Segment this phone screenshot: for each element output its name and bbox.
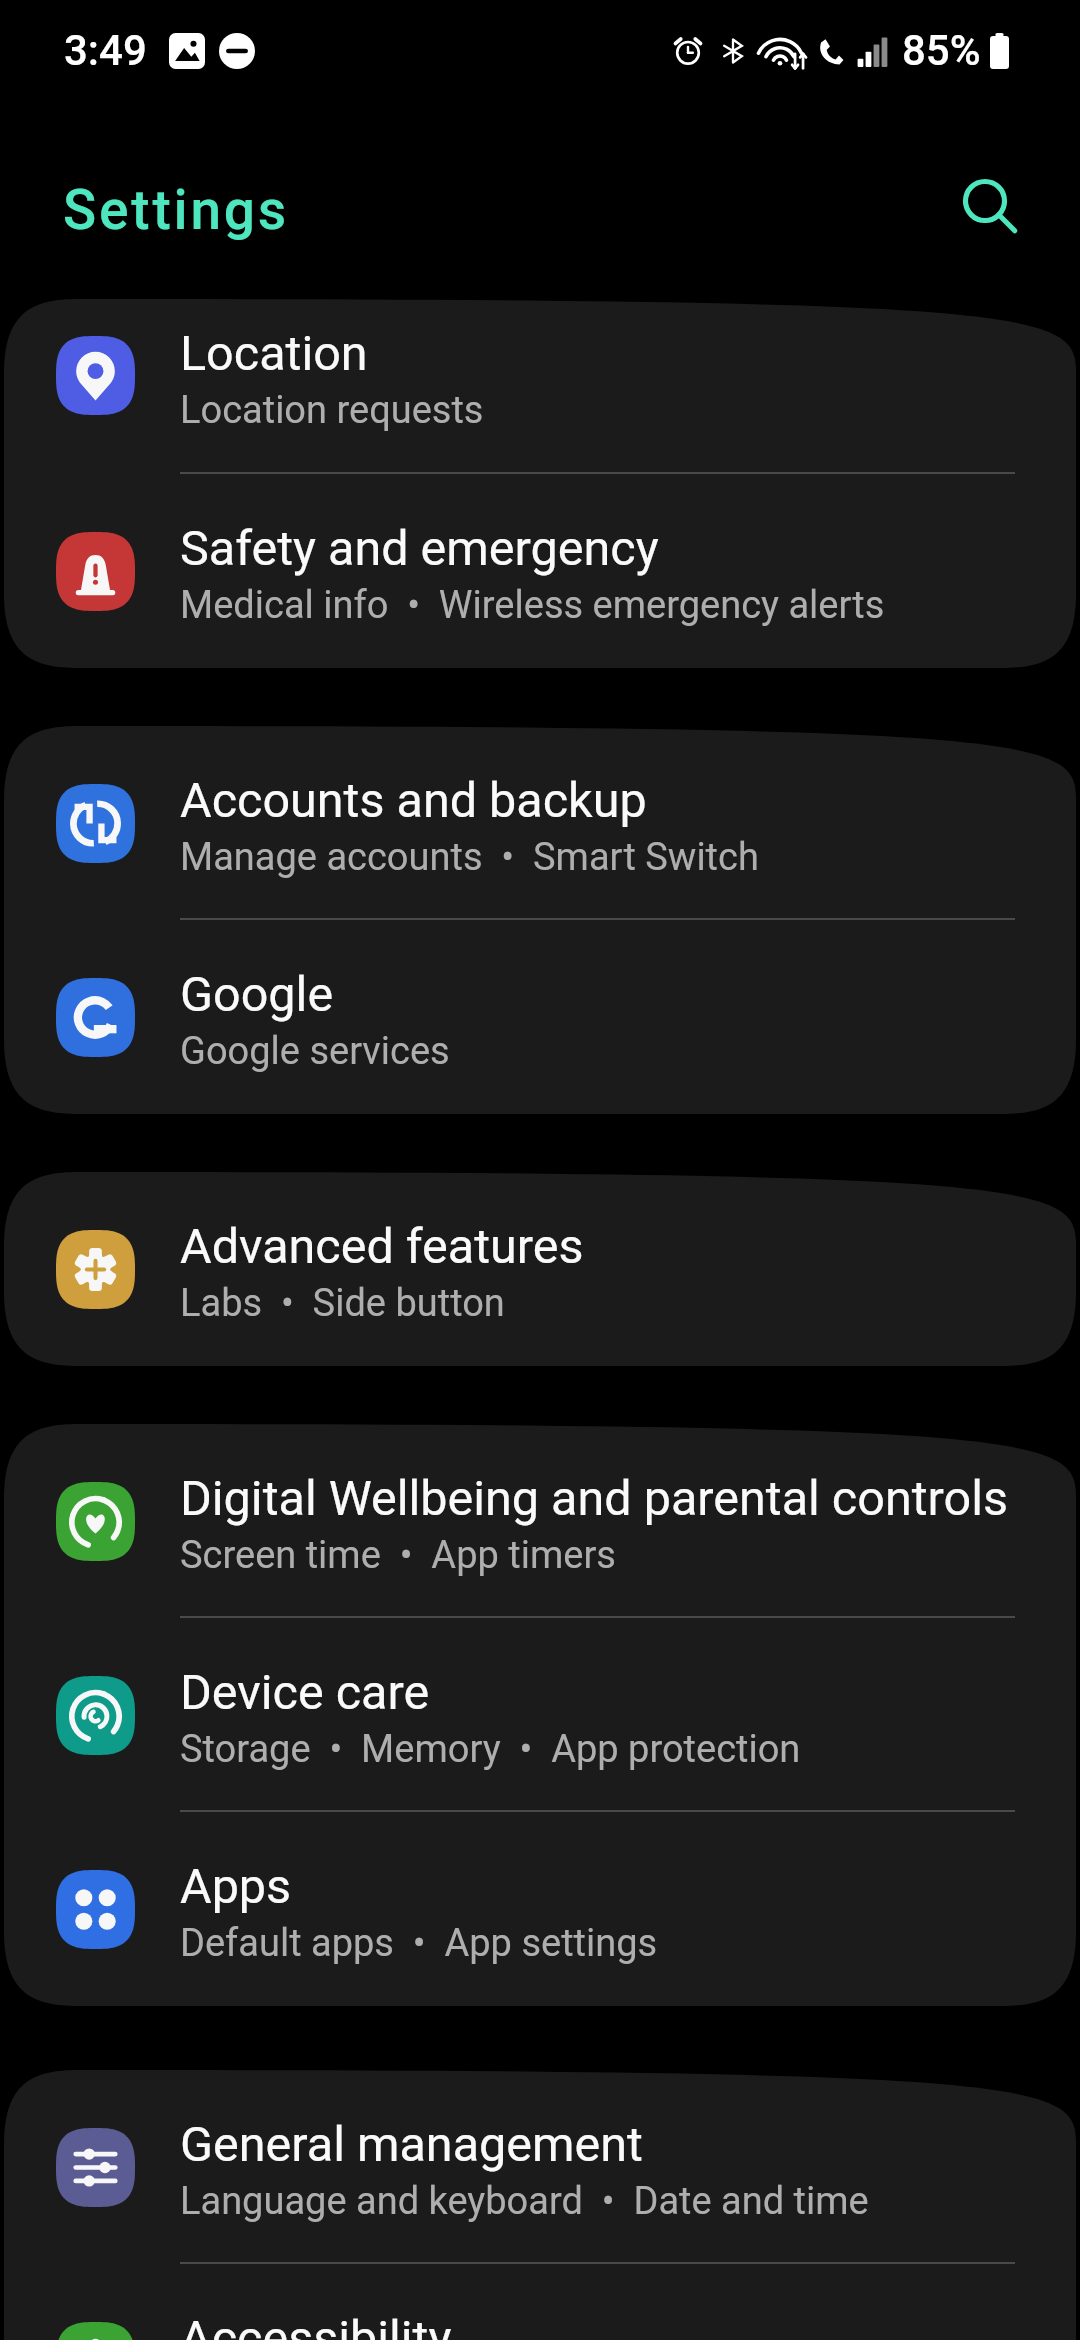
staticText: Digital Wellbeing and parental controls	[180, 1470, 1008, 1527]
button[interactable]: Digital Wellbeing and parental controls	[4, 1424, 1076, 1618]
staticText: 3:49	[64, 26, 147, 75]
button[interactable]: Safety and emergency	[4, 474, 1076, 668]
staticText: Device care	[180, 1664, 430, 1721]
staticText: Screen time • App timers	[180, 1533, 616, 1578]
staticText: Google services	[180, 1029, 450, 1074]
button[interactable]: Accessibility	[4, 2264, 1076, 2340]
staticText: Labs • Side button	[180, 1281, 505, 1326]
staticText: Default apps • App settings	[180, 1921, 658, 1966]
staticText: General management	[180, 2116, 643, 2173]
staticText: Safety and emergency	[180, 520, 659, 577]
staticText: Medical info • Wireless emergency alerts	[180, 583, 885, 628]
button[interactable]: Google	[4, 920, 1076, 1114]
staticText: 85%	[902, 26, 981, 75]
staticText: Location requests	[180, 388, 484, 433]
button[interactable]: General management	[4, 2070, 1076, 2264]
button[interactable]: Advanced features	[4, 1172, 1076, 1366]
button[interactable]: Apps	[4, 1812, 1076, 2006]
button[interactable]: Search	[940, 157, 1034, 251]
staticText: Google	[180, 966, 334, 1023]
staticText: Accounts and backup	[180, 772, 647, 829]
staticText: Language and keyboard • Date and time	[180, 2179, 869, 2224]
staticText: Location	[180, 325, 368, 382]
staticText: Advanced features	[180, 1218, 584, 1275]
staticText: Apps	[180, 1858, 292, 1915]
staticText: Storage • Memory • App protection	[180, 1727, 801, 1772]
button[interactable]: Device care	[4, 1618, 1076, 1812]
staticText: Accessibility	[180, 2310, 452, 2340]
staticText: Manage accounts • Smart Switch	[180, 835, 759, 880]
button[interactable]: Accounts and backup	[4, 726, 1076, 920]
button[interactable]: Location	[4, 299, 1076, 474]
staticText: Settings	[63, 178, 290, 242]
